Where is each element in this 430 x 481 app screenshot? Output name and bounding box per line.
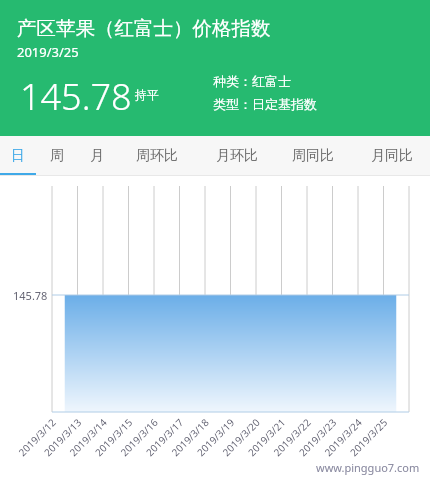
staticText: 周环比 bbox=[136, 147, 178, 165]
staticText: 月 bbox=[90, 147, 104, 165]
button[interactable]: 月同比 bbox=[365, 136, 419, 176]
staticText: 产区苹果（红富士）价格指数 bbox=[17, 16, 271, 41]
button[interactable]: 日 bbox=[5, 136, 31, 176]
staticText: 周同比 bbox=[292, 147, 334, 165]
button[interactable]: 周环比 bbox=[130, 136, 184, 176]
staticText: 周 bbox=[50, 147, 64, 165]
staticText: 持平 bbox=[135, 87, 159, 102]
button[interactable]: 月 bbox=[84, 136, 110, 176]
button[interactable]: 周 bbox=[44, 136, 70, 176]
staticText: 种类：红富士 bbox=[213, 73, 291, 89]
staticText: 类型：日定基指数 bbox=[213, 96, 317, 112]
button[interactable]: 月环比 bbox=[210, 136, 264, 176]
staticText: 月环比 bbox=[216, 147, 258, 165]
staticText: 2019/3/25 bbox=[17, 43, 79, 61]
staticText: 145.78 bbox=[20, 72, 132, 121]
button[interactable]: 周同比 bbox=[286, 136, 340, 176]
staticText: 月同比 bbox=[371, 147, 413, 165]
staticText: 日 bbox=[11, 147, 25, 165]
